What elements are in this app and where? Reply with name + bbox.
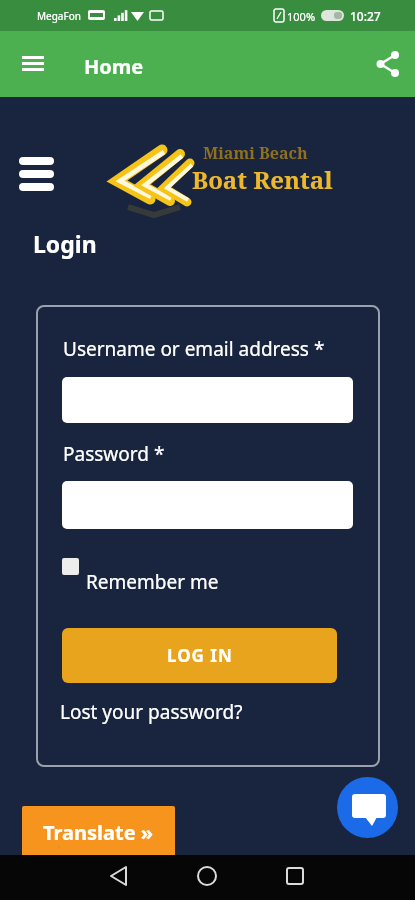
- staticText: Username or email address *: [63, 336, 325, 362]
- button[interactable]: [62, 481, 353, 529]
- button[interactable]: [62, 377, 353, 423]
- button[interactable]: Translate »: [22, 806, 175, 858]
- staticText: Login: [33, 228, 97, 259]
- staticText: Translate »: [43, 819, 154, 846]
- staticText: LOG IN: [167, 644, 233, 667]
- staticText: Remember me: [86, 569, 219, 595]
- staticText: 100%: [287, 9, 316, 24]
- staticText: Boat Rental: [192, 163, 333, 196]
- button[interactable]: [189, 860, 225, 896]
- staticText: Home: [84, 53, 144, 80]
- staticText: Miami Beach: [203, 142, 308, 164]
- staticText: 10:27: [350, 8, 381, 24]
- button[interactable]: [62, 558, 79, 575]
- button[interactable]: [16, 152, 60, 198]
- button[interactable]: [14, 48, 52, 84]
- button[interactable]: [277, 860, 313, 896]
- button[interactable]: LOG IN: [62, 628, 337, 683]
- button[interactable]: [337, 777, 398, 838]
- button[interactable]: [368, 43, 408, 83]
- button[interactable]: Lost your password?: [60, 699, 243, 725]
- staticText: Password *: [63, 441, 165, 467]
- button[interactable]: [100, 860, 136, 896]
- staticText: MegaFon: [37, 9, 81, 23]
